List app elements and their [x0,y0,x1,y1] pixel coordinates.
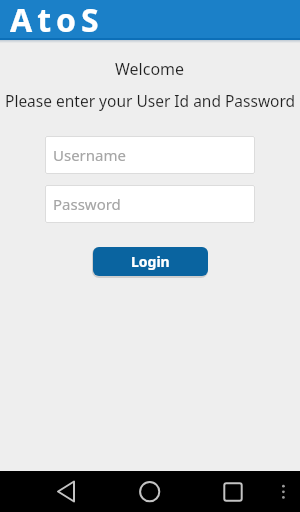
staticText: Login [131,252,170,271]
staticText: Welcome [115,58,185,80]
button[interactable]: Username [45,136,255,174]
staticText: Username [53,145,126,165]
button[interactable] [0,471,100,512]
staticText: Password [53,194,121,214]
staticText: Please enter your User Id and Password [5,90,296,111]
button[interactable] [100,471,200,512]
button[interactable]: Password [45,185,255,223]
button[interactable]: Login [93,247,208,276]
button[interactable] [200,471,300,512]
staticText: AtoS [10,0,104,38]
